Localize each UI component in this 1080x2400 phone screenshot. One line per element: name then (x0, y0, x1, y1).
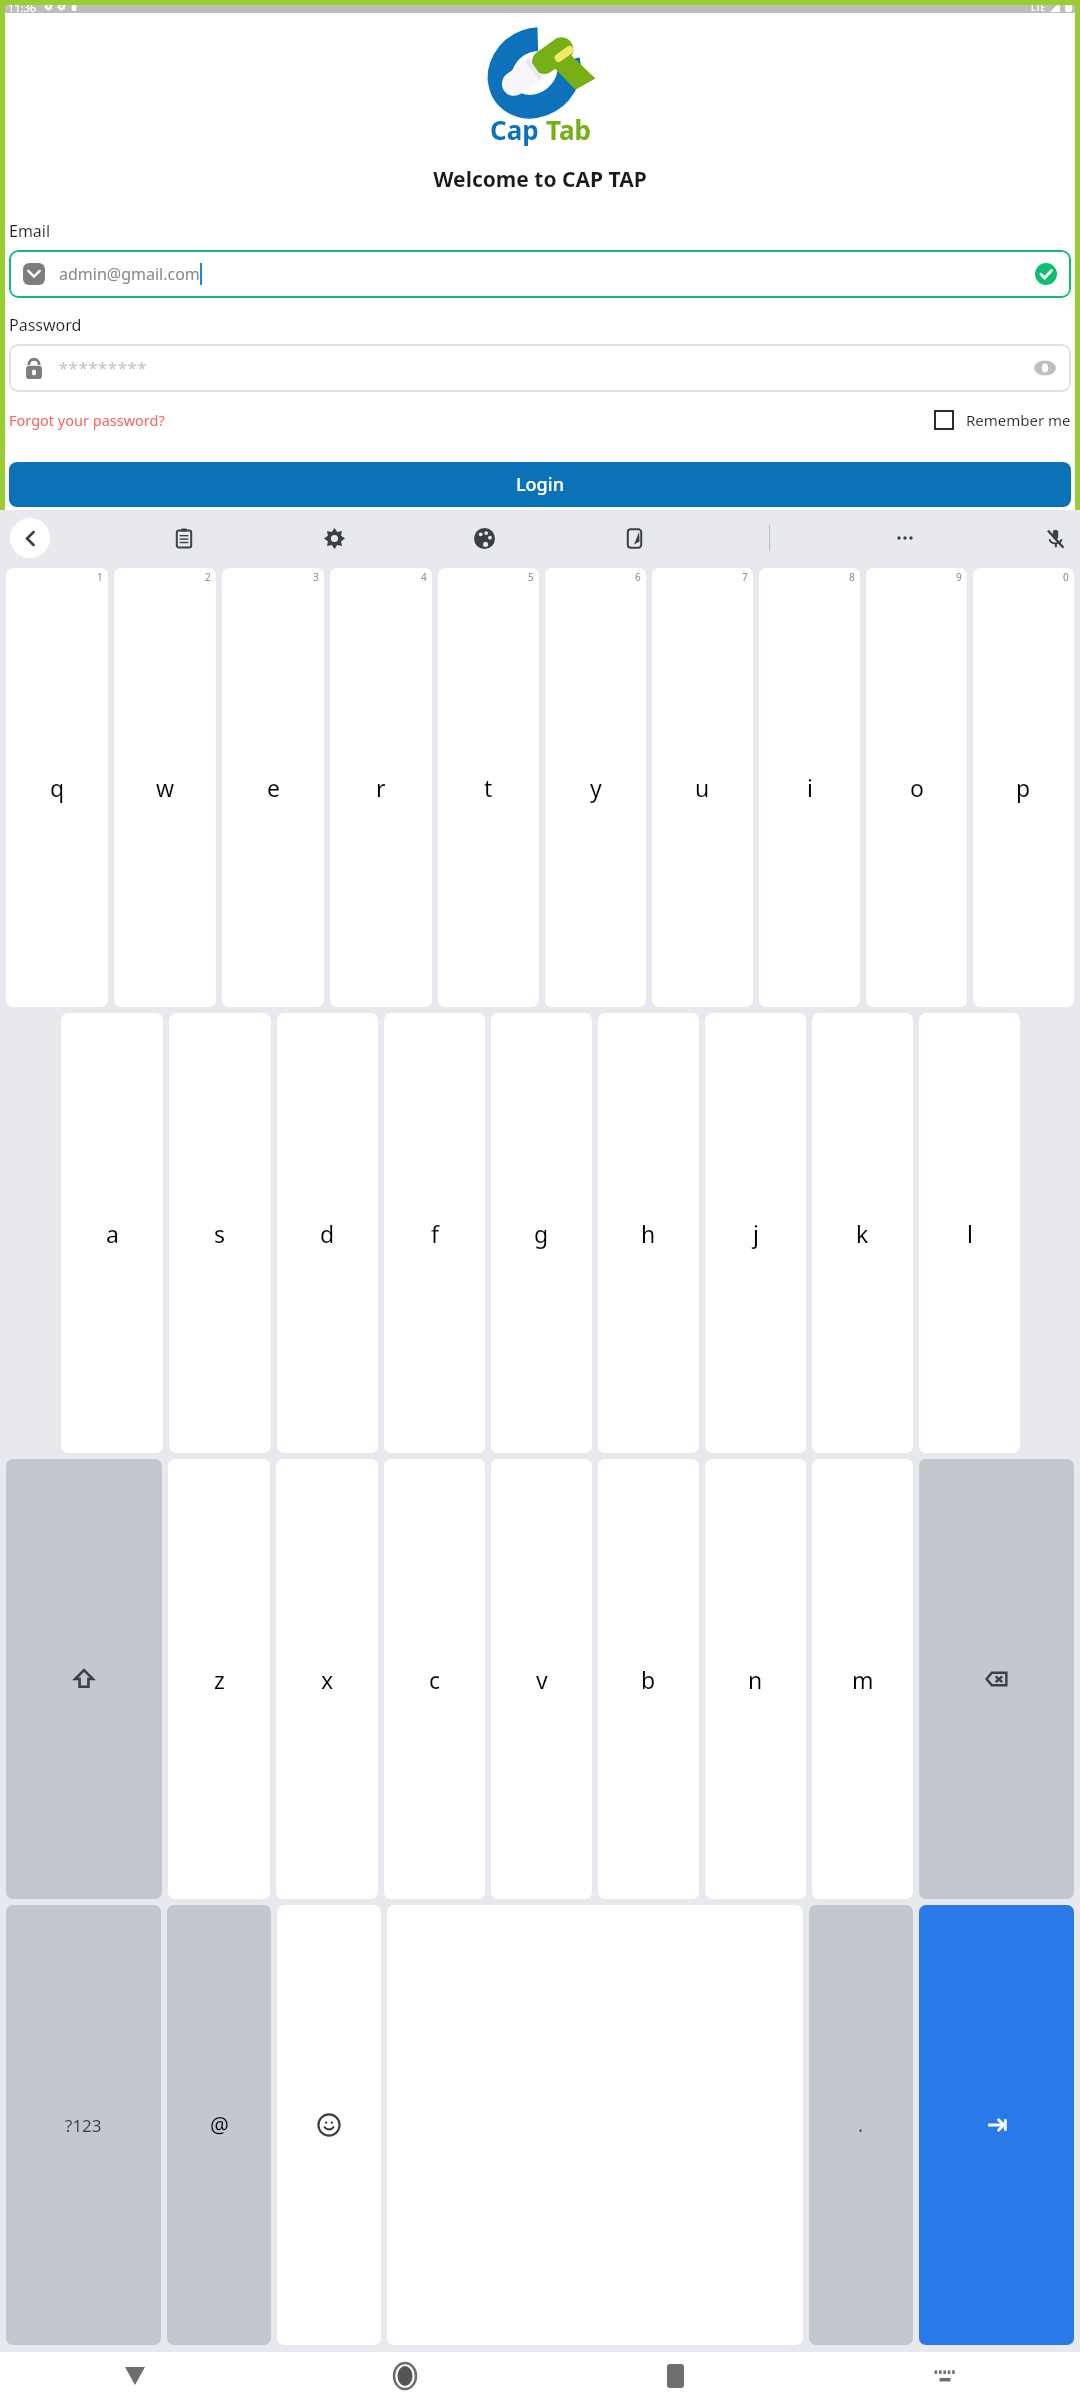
button[interactable]: t (438, 568, 539, 1007)
staticText: Cap (490, 112, 546, 147)
button[interactable]: r (330, 568, 432, 1007)
staticText: 2 (205, 570, 211, 584)
staticText: 9 (956, 570, 962, 584)
button[interactable]: @ (167, 1905, 271, 2345)
staticText: a (106, 1218, 119, 1249)
button[interactable]: y (545, 568, 646, 1007)
staticText: ********* (59, 357, 148, 379)
button[interactable]: admin@gmail.com (9, 250, 1071, 298)
button[interactable]: a (61, 1013, 163, 1453)
button[interactable]: ?123 (6, 1905, 161, 2345)
button[interactable]: u (652, 568, 753, 1007)
staticText: e (267, 772, 280, 803)
staticText: c (429, 1664, 441, 1695)
staticText: 0 (1063, 570, 1069, 584)
button[interactable]: w (114, 568, 216, 1007)
button[interactable]: m (812, 1459, 913, 1899)
button[interactable]: j (705, 1013, 806, 1453)
button[interactable]: Theme (469, 523, 499, 553)
button[interactable]: d (277, 1013, 378, 1453)
button[interactable]: Home (270, 2352, 540, 2400)
button[interactable]: Recent apps (540, 2352, 810, 2400)
button[interactable]: Settings (319, 523, 349, 553)
button[interactable]: Back (10, 518, 50, 558)
button[interactable]: Backspace (919, 1459, 1074, 1899)
button[interactable]: k (812, 1013, 913, 1453)
staticText: t (484, 772, 493, 803)
staticText: f (431, 1218, 439, 1249)
button[interactable]: s (169, 1013, 271, 1453)
staticText: s (214, 1218, 226, 1249)
button[interactable]: z (168, 1459, 270, 1899)
staticText: i (807, 772, 813, 803)
button[interactable]: g (491, 1013, 592, 1453)
button[interactable]: l (919, 1013, 1020, 1453)
staticText: Forgot your password? (9, 410, 165, 430)
button[interactable]: ********* (9, 344, 1071, 392)
button[interactable]: Forgot your password? (9, 406, 165, 434)
staticText: l (967, 1218, 973, 1249)
staticText: d (320, 1218, 335, 1249)
button[interactable]: p (973, 568, 1074, 1007)
button[interactable]: Remember me (934, 406, 1071, 434)
staticText: h (641, 1218, 656, 1249)
staticText: 11:36 (8, 0, 37, 13)
button[interactable]: e (222, 568, 324, 1007)
staticText: j (753, 1218, 759, 1249)
button[interactable]: b (598, 1459, 699, 1899)
button[interactable]: Back (0, 2352, 270, 2400)
staticText: Login (516, 472, 564, 497)
staticText: p (1016, 772, 1031, 803)
staticText: u (695, 772, 710, 803)
button[interactable]: Show password (1033, 356, 1057, 380)
button[interactable]: x (276, 1459, 378, 1899)
button[interactable]: Login (9, 462, 1071, 507)
button[interactable]: n (705, 1459, 806, 1899)
button[interactable]: Switch keyboard (810, 2352, 1080, 2400)
staticText: Email (9, 220, 51, 242)
button[interactable]: Voice input muted (1040, 523, 1070, 553)
staticText: 1 (97, 570, 103, 584)
staticText: x (321, 1664, 334, 1695)
staticText: Password (9, 314, 82, 336)
staticText: 6 (635, 570, 641, 584)
staticText: v (536, 1664, 548, 1695)
staticText: z (214, 1664, 225, 1695)
staticText: 4 (421, 570, 427, 584)
staticText: @ (210, 2111, 229, 2140)
staticText: b (641, 1664, 656, 1695)
staticText: g (534, 1218, 549, 1249)
button[interactable]: Enter (919, 1905, 1074, 2345)
staticText: 8 (849, 570, 855, 584)
staticText: LTE (1031, 1, 1046, 13)
staticText: o (910, 772, 924, 803)
button[interactable]: Clipboard (169, 523, 199, 553)
staticText: admin@gmail.com (59, 263, 200, 285)
button[interactable]: q (6, 568, 108, 1007)
button[interactable]: Shift (6, 1459, 162, 1899)
staticText: 7 (742, 570, 748, 584)
staticText: q (50, 772, 65, 803)
staticText: y (590, 772, 602, 803)
button[interactable]: h (598, 1013, 699, 1453)
staticText: 5 (528, 570, 534, 584)
button[interactable]: o (866, 568, 967, 1007)
staticText: ?123 (65, 2114, 102, 2137)
staticText: m (852, 1664, 874, 1695)
button[interactable]: v (491, 1459, 592, 1899)
staticText: n (748, 1664, 763, 1695)
staticText: . (858, 2112, 864, 2138)
staticText: k (856, 1218, 869, 1249)
button[interactable]: c (384, 1459, 485, 1899)
button[interactable]: Emoji (277, 1905, 381, 2345)
staticText: w (156, 772, 175, 803)
button[interactable]: i (759, 568, 860, 1007)
staticText: Welcome to CAP TAP (433, 165, 647, 194)
button[interactable]: Handwriting (619, 523, 649, 553)
staticText: Tab (546, 112, 591, 147)
button[interactable]: f (384, 1013, 485, 1453)
button[interactable]: More options (890, 523, 920, 553)
staticText: Remember me (966, 410, 1071, 430)
